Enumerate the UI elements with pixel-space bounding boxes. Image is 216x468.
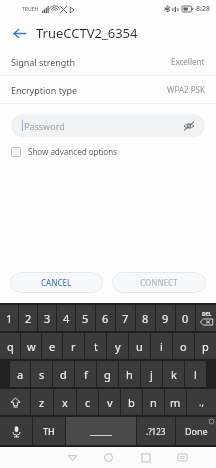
staticText: h [126,367,133,382]
button[interactable]: 6 [96,305,115,331]
button[interactable]: Password [11,114,205,137]
staticText: 8 [142,311,149,326]
staticText: e [49,339,56,354]
button[interactable]: 5 [76,305,95,331]
staticText: b [128,395,135,410]
button[interactable]: k [163,361,184,387]
staticText: k [171,367,177,382]
staticText: 1 [6,311,13,326]
button[interactable]: g [97,361,118,387]
button[interactable]: Home [90,447,127,468]
button[interactable]: h [119,361,140,387]
staticText: 0 [182,311,189,326]
button[interactable]: x [54,389,76,415]
staticText: Excellent [171,56,205,67]
button[interactable]: j [141,361,162,387]
staticText: r [71,339,76,354]
button[interactable]: 2 [19,305,37,331]
button[interactable]: CANCEL [10,272,103,293]
staticText: f [84,367,88,382]
button[interactable]: .?123 [137,417,175,445]
staticText: p [202,339,209,354]
staticText: 2 [25,311,32,326]
staticText: j [150,367,153,382]
button[interactable]: n [143,389,164,415]
staticText: i [160,339,163,354]
button[interactable]: Encryption type [0,76,216,103]
button[interactable]: Signal strength [0,48,216,75]
button[interactable]: Done [176,417,216,445]
button[interactable]: CONNECT [112,272,206,293]
button[interactable]: y [107,333,128,359]
button[interactable]: v [99,389,120,415]
staticText: 6 [102,311,109,326]
staticText: o [180,339,187,354]
button[interactable]: Voice input [0,417,32,445]
button[interactable]: TH [33,417,65,445]
staticText: y [115,339,121,354]
staticText: c [85,395,91,410]
staticText: TH [43,425,55,437]
button[interactable]: s [31,361,52,387]
button[interactable]: c [77,389,98,415]
staticText: w [27,339,36,354]
button[interactable]: w [21,333,41,359]
button[interactable]: 3 [38,305,56,331]
button[interactable]: d [53,361,74,387]
button[interactable]: o [173,333,194,359]
button[interactable]: u [129,333,150,359]
staticText: 4 [63,311,70,326]
button[interactable]: 7 [116,305,135,331]
button[interactable]: i [151,333,172,359]
button[interactable]: 8 [136,305,155,331]
staticText: Show advanced options [28,146,117,157]
button[interactable]: f [75,361,96,387]
button[interactable]: Show password [182,119,196,133]
button[interactable]: a [10,361,30,387]
button[interactable]: Recents [127,447,164,468]
staticText: t [94,339,98,354]
staticText: TrueCCTV2_6354 [36,24,138,42]
staticText: WPA2 PSK [167,84,205,95]
button[interactable]: Space [66,417,136,445]
staticText: CANCEL [41,277,72,288]
staticText: x [62,395,68,410]
staticText: l [194,367,197,382]
button[interactable]: e [42,333,62,359]
button[interactable]: r [63,333,84,359]
staticText: 5 [82,311,89,326]
staticText: 3 [44,311,51,326]
button[interactable]: b [121,389,142,415]
staticText: g [104,367,111,382]
staticText: CONNECT [140,277,178,288]
button[interactable]: 9 [156,305,175,331]
button[interactable]: Delete [196,305,216,331]
staticText: u [136,339,143,354]
button[interactable]: Back [54,447,90,468]
staticText: .?123 [146,426,166,437]
button[interactable]: l [185,361,206,387]
staticText: Signal strength [11,56,76,68]
button[interactable]: Show advanced options [11,146,117,157]
button[interactable]: 1 [0,305,18,331]
staticText: Password [24,120,65,132]
button[interactable]: Shift [0,389,30,415]
button[interactable]: m [165,389,186,415]
button[interactable]: p [195,333,216,359]
button[interactable]: 0 [176,305,195,331]
staticText: a [17,367,24,382]
button[interactable]: t [85,333,106,359]
button[interactable]: z [31,389,53,415]
staticText: d [60,367,67,382]
button[interactable]: q [0,333,20,359]
staticText: TRUEH [22,6,39,13]
staticText: q [7,339,14,354]
staticText: z [39,395,45,410]
button[interactable]: Hide keyboard [164,447,201,468]
staticText: Done [185,425,208,437]
button[interactable]: ., [187,389,216,415]
button[interactable]: Back [8,22,30,44]
button[interactable]: 4 [57,305,75,331]
staticText: 7 [122,311,129,326]
staticText: 8:28 [196,4,210,14]
